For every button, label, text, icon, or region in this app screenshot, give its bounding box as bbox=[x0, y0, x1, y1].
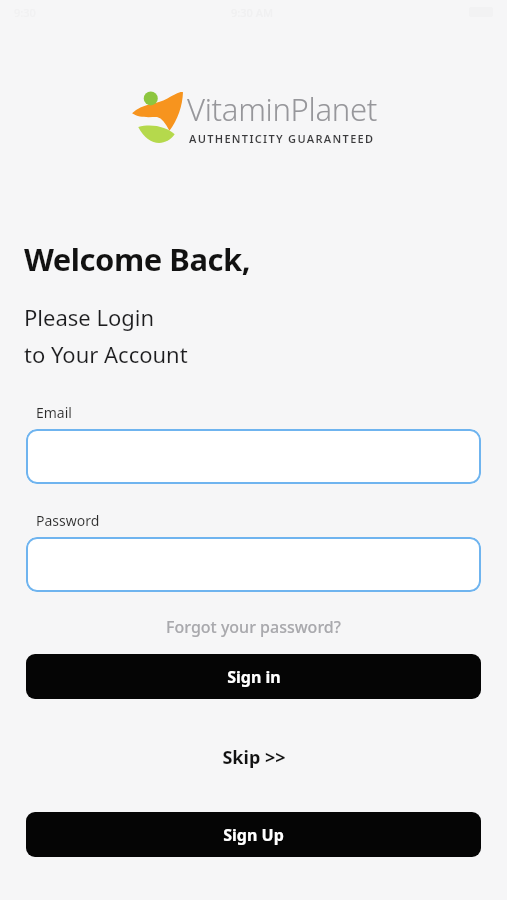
staticText: Forgot your password? bbox=[166, 616, 341, 638]
button[interactable]: Forgot your password? bbox=[0, 612, 507, 642]
staticText: VitaminPlanet bbox=[187, 88, 377, 130]
staticText: Sign in bbox=[227, 666, 281, 688]
staticText: Please Login bbox=[24, 302, 155, 332]
staticText: Skip >> bbox=[222, 745, 286, 770]
button[interactable]: Sign Up bbox=[26, 812, 481, 857]
staticText: Email bbox=[36, 403, 72, 422]
button[interactable]: Skip >> bbox=[0, 739, 507, 776]
staticText: Welcome Back, bbox=[24, 238, 250, 280]
staticText: Password bbox=[36, 511, 100, 530]
staticText: Sign Up bbox=[223, 824, 284, 846]
staticText: AUTHENTICITY GUARANTEED bbox=[189, 131, 375, 146]
button[interactable]: Email input field bbox=[26, 429, 481, 484]
staticText: to Your Account bbox=[24, 339, 188, 369]
button[interactable]: Password input field bbox=[26, 537, 481, 592]
button[interactable]: Sign in bbox=[26, 654, 481, 699]
